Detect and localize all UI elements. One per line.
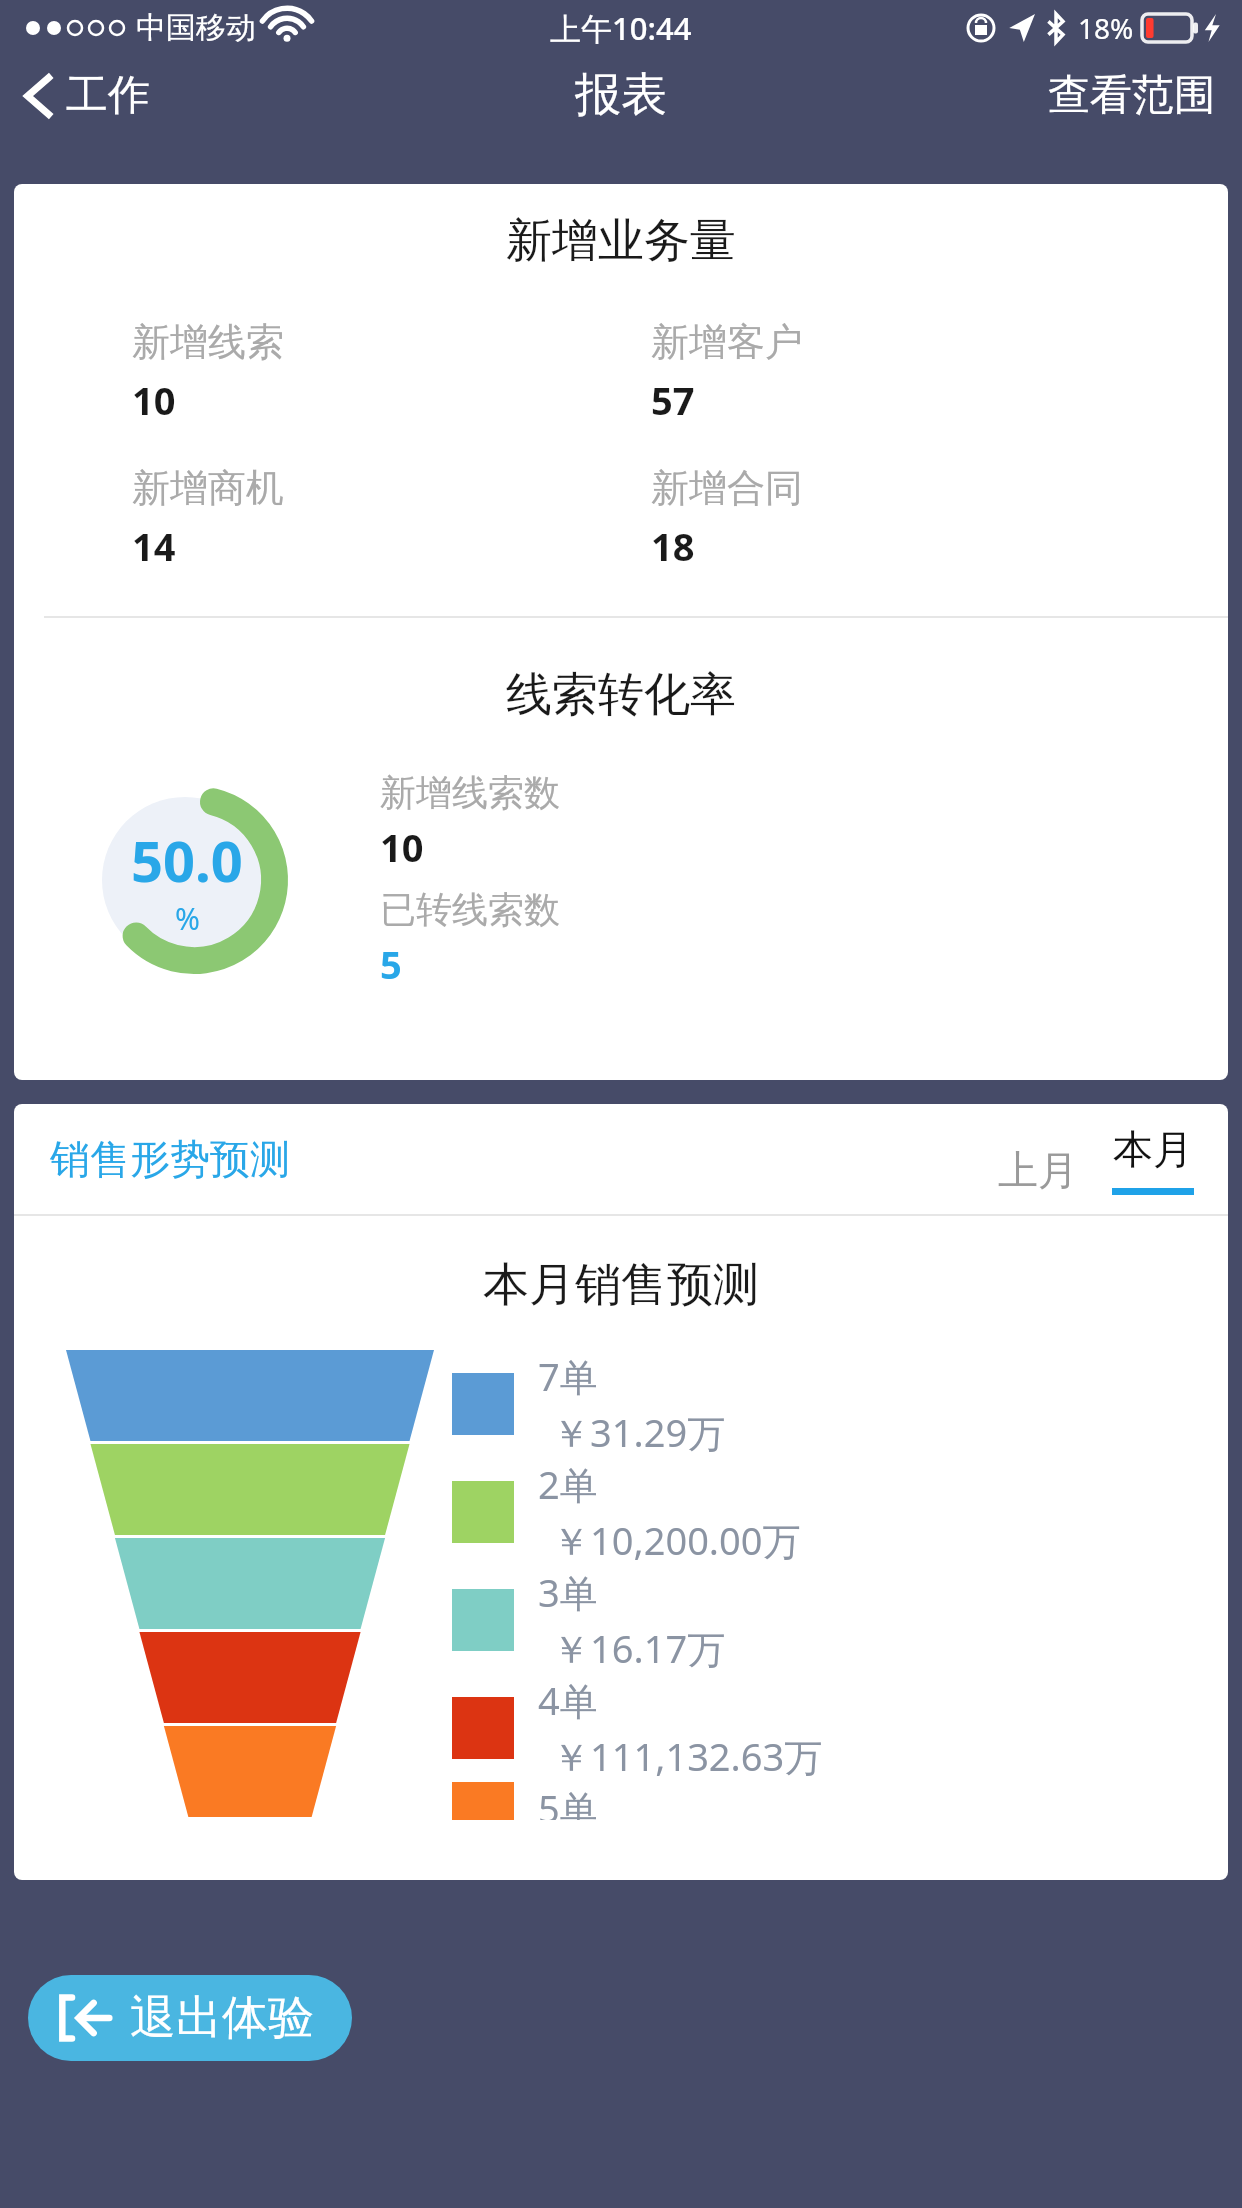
staticText: 本月销售预测: [14, 1256, 1228, 1314]
staticText: 5单: [538, 1782, 598, 1820]
staticText: 上午10:44: [550, 7, 692, 49]
button[interactable]: 工作: [0, 63, 168, 128]
staticText: 50.0: [131, 822, 243, 898]
staticText: ￥31.29万: [552, 1406, 726, 1458]
button[interactable]: 上月: [990, 1135, 1086, 1205]
staticText: 10: [132, 374, 176, 426]
staticText: 3单: [538, 1566, 598, 1618]
staticText: 57: [651, 374, 695, 426]
staticText: 销售形势预测: [50, 1134, 290, 1184]
staticText: 本月: [1113, 1124, 1193, 1174]
staticText: 新增合同: [651, 464, 803, 512]
staticText: 7单: [538, 1350, 598, 1402]
staticText: 新增商机: [132, 464, 284, 512]
button[interactable]: 查看范围: [1022, 61, 1242, 130]
staticText: 工作: [66, 69, 150, 122]
staticText: 18: [651, 520, 695, 572]
staticText: 报表: [575, 66, 667, 124]
button[interactable]: 退出体验: [28, 1975, 352, 2061]
staticText: %: [175, 898, 200, 939]
staticText: ￥16.17万: [552, 1622, 726, 1674]
staticText: ￥111,132.63万: [552, 1730, 823, 1782]
staticText: 中国移动: [136, 9, 256, 47]
staticText: 上月: [998, 1145, 1078, 1195]
staticText: 18%: [1078, 9, 1134, 47]
staticText: 新增线索数: [380, 770, 560, 815]
staticText: 新增线索: [132, 318, 284, 366]
staticText: 2单: [538, 1458, 598, 1510]
staticText: ￥10,200.00万: [552, 1514, 801, 1566]
staticText: 新增业务量: [14, 212, 1228, 270]
staticText: 10: [380, 821, 424, 873]
staticText: 线索转化率: [14, 666, 1228, 724]
staticText: 5: [380, 938, 402, 990]
staticText: 新增客户: [651, 318, 803, 366]
staticText: 已转线索数: [380, 887, 560, 932]
staticText: 4单: [538, 1674, 598, 1726]
staticText: 退出体验: [130, 1989, 314, 2047]
other: 退出体验: [58, 1991, 112, 2045]
staticText: 14: [132, 520, 176, 572]
button[interactable]: 本月: [1104, 1114, 1202, 1205]
